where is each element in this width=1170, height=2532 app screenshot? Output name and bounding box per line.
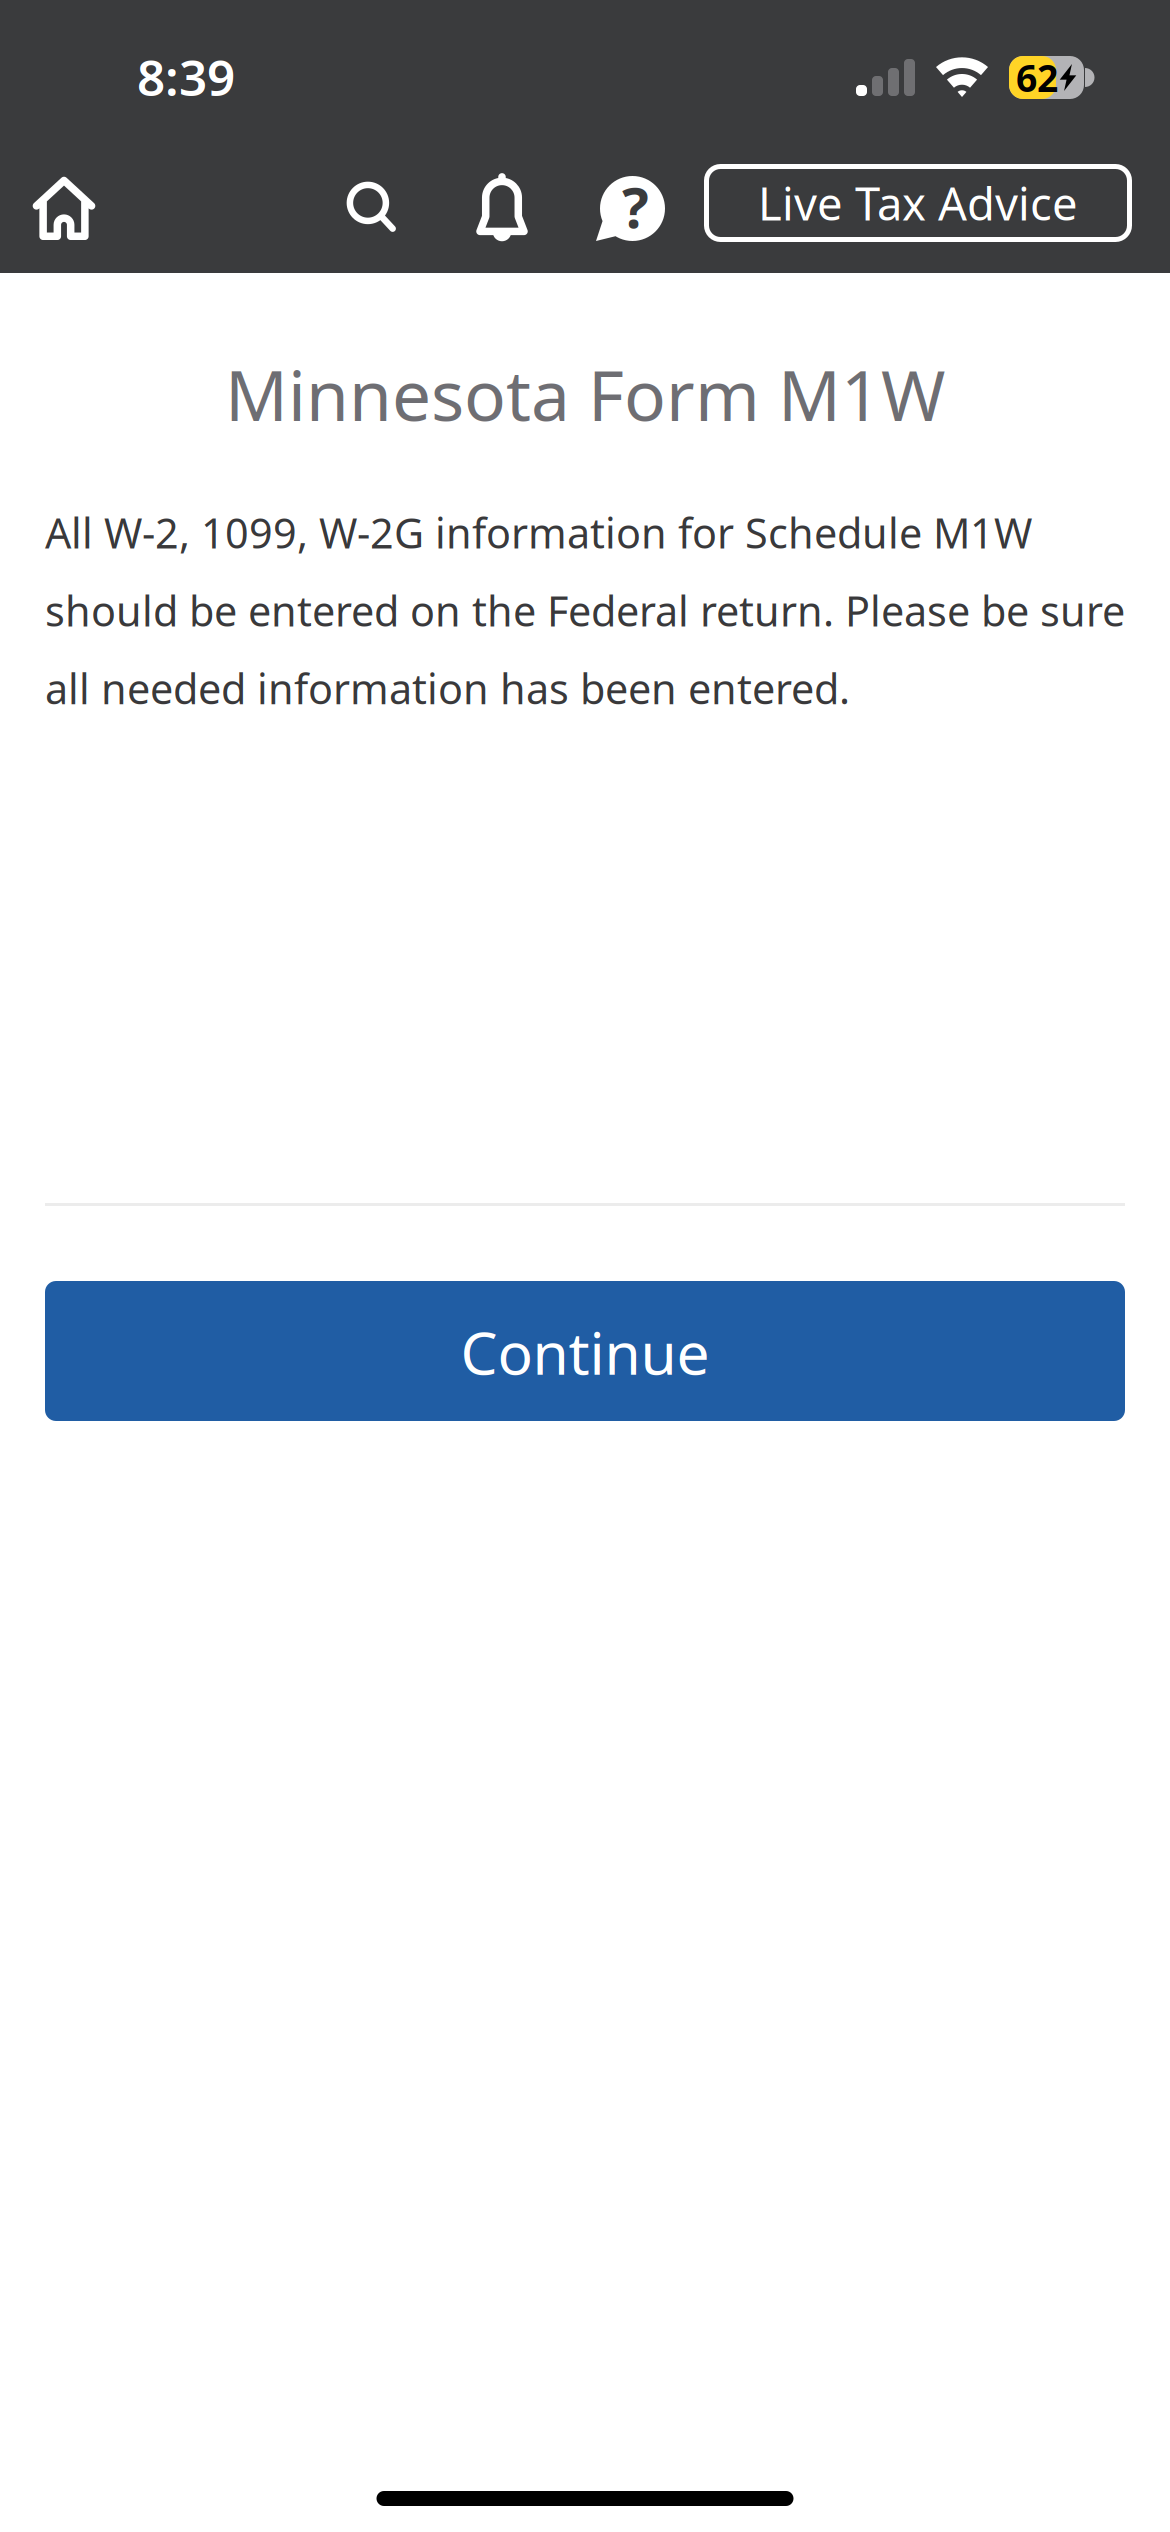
staticText: 62 xyxy=(1016,53,1058,102)
button[interactable]: Live Tax Advice xyxy=(704,164,1132,242)
staticText: 8:39 xyxy=(137,44,235,109)
staticText: Live Tax Advice xyxy=(758,173,1078,233)
button[interactable]: Help xyxy=(574,158,687,259)
staticText: Minnesota Form M1W xyxy=(225,348,945,440)
button[interactable]: Continue xyxy=(0,1206,1170,1421)
button[interactable]: Home xyxy=(13,159,115,259)
staticText: Continue xyxy=(460,1313,709,1391)
button[interactable]: Notifications xyxy=(454,159,550,254)
staticText: All W-2, 1099, W-2G information for Sche… xyxy=(45,505,1125,716)
staticText: ? xyxy=(622,169,649,244)
button[interactable]: Search xyxy=(323,159,420,255)
